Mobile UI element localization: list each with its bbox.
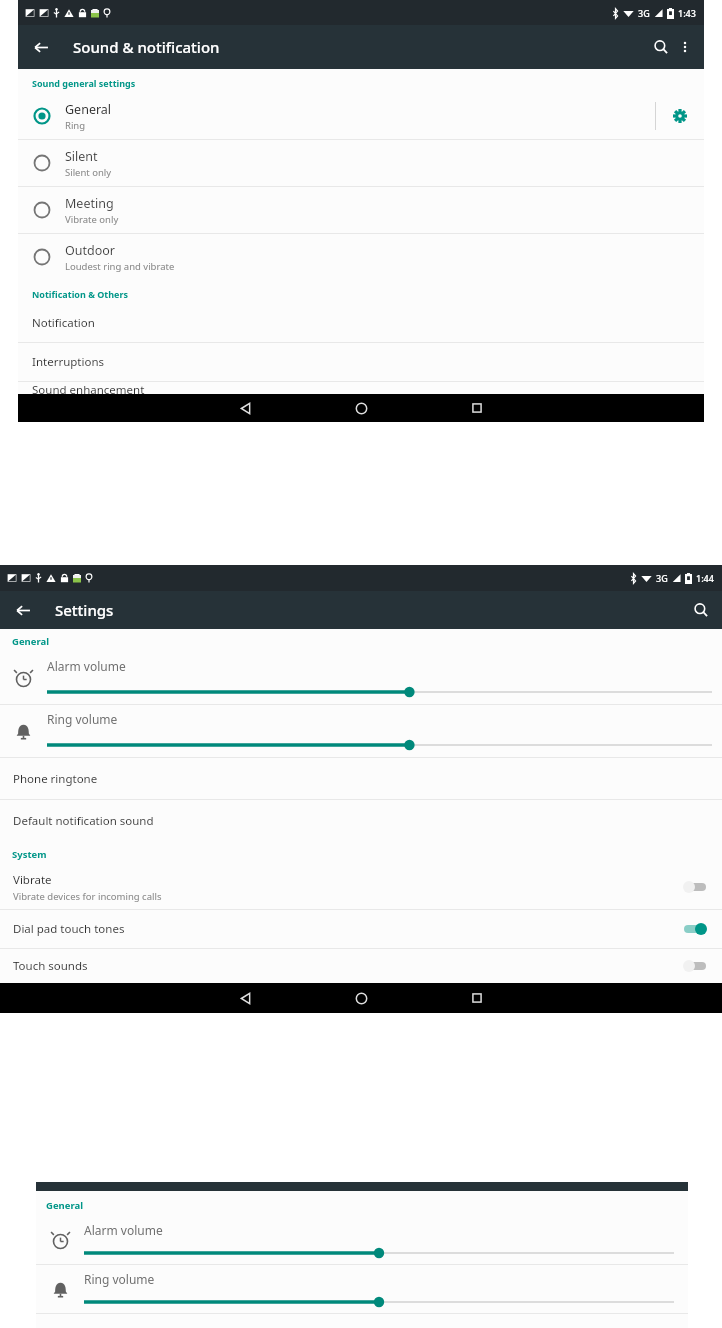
- staticText: Sound & notification: [73, 37, 220, 57]
- staticText: Vibrate devices for incoming calls: [13, 890, 162, 903]
- button[interactable]: Search: [648, 34, 674, 60]
- staticText: Default notification sound: [13, 813, 154, 829]
- staticText: 1:43: [678, 7, 696, 19]
- button[interactable]: Default notification sound: [0, 800, 722, 841]
- staticText: Sound enhancement: [32, 382, 145, 394]
- staticText: Notification: [32, 315, 95, 331]
- staticText: Loudest ring and vibrate: [65, 260, 175, 273]
- staticText: Ring: [65, 119, 86, 132]
- button[interactable]: Dial pad touch tones: [0, 910, 722, 948]
- staticText: Silent: [65, 148, 98, 165]
- button[interactable]: Ring volume: [0, 705, 722, 757]
- button[interactable]: Alarm volume: [0, 652, 722, 704]
- button[interactable]: Interruptions: [18, 343, 704, 381]
- button[interactable]: Back: [28, 34, 54, 60]
- staticText: Silent only: [65, 166, 112, 179]
- staticText: General: [12, 635, 49, 648]
- staticText: Ring volume: [84, 1271, 155, 1287]
- staticText: Phone ringtone: [13, 771, 98, 787]
- button[interactable]: Outdoor: [18, 234, 704, 280]
- button[interactable]: Vibrate: [0, 865, 722, 909]
- button[interactable]: Home: [303, 983, 419, 1013]
- staticText: Alarm volume: [47, 658, 126, 674]
- button[interactable]: Home: [303, 394, 419, 422]
- button[interactable]: Sound enhancement: [18, 382, 704, 394]
- button[interactable]: Phone ringtone: [0, 758, 722, 799]
- button[interactable]: Recents: [419, 394, 535, 422]
- staticText: System: [12, 848, 47, 861]
- button[interactable]: Recents: [419, 983, 535, 1013]
- button[interactable]: Back: [10, 597, 36, 623]
- staticText: Notification & Others: [32, 288, 129, 300]
- button[interactable]: Meeting: [18, 187, 704, 233]
- staticText: 3G: [656, 572, 668, 584]
- staticText: Ring volume: [47, 711, 118, 727]
- staticText: 1:44: [696, 572, 714, 584]
- staticText: Settings: [55, 600, 114, 620]
- button[interactable]: Silent: [18, 140, 704, 186]
- staticText: General: [65, 101, 112, 118]
- staticText: Interruptions: [32, 354, 105, 370]
- staticText: Vibrate: [13, 872, 52, 888]
- button[interactable]: Ring volume: [36, 1265, 688, 1313]
- button[interactable]: More options: [674, 36, 696, 58]
- button[interactable]: Touch sounds: [0, 949, 722, 983]
- button[interactable]: Search: [688, 597, 714, 623]
- staticText: Alarm volume: [84, 1222, 163, 1238]
- button[interactable]: Back: [187, 983, 303, 1013]
- staticText: Meeting: [65, 195, 114, 212]
- button[interactable]: General: [18, 93, 704, 139]
- staticText: Outdoor: [65, 242, 115, 259]
- staticText: 3G: [638, 7, 650, 19]
- staticText: Sound general settings: [32, 77, 136, 89]
- button[interactable]: Back: [187, 394, 303, 422]
- staticText: Touch sounds: [13, 958, 88, 974]
- staticText: Vibrate only: [65, 213, 119, 226]
- button[interactable]: Alarm volume: [36, 1216, 688, 1264]
- button[interactable]: Notification: [18, 304, 704, 342]
- staticText: Dial pad touch tones: [13, 921, 125, 937]
- button[interactable]: General settings: [656, 93, 704, 139]
- staticText: General: [46, 1199, 83, 1212]
